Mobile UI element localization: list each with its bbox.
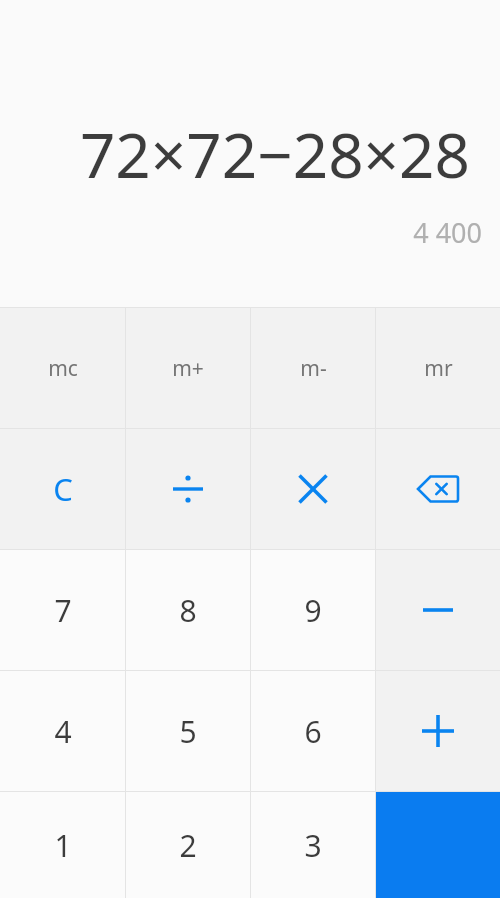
button[interactable]: 7 [0, 550, 125, 670]
button[interactable]: mc [0, 308, 125, 428]
staticText: 1 [54, 825, 72, 866]
staticText: C [53, 468, 73, 510]
staticText: 9 [304, 590, 322, 631]
button[interactable]: 2 [126, 792, 250, 898]
button[interactable]: 6 [251, 671, 375, 791]
button[interactable]: m+ [126, 308, 250, 428]
button[interactable]: Plus [376, 671, 500, 791]
staticText: 6 [304, 711, 322, 752]
button[interactable]: m- [251, 308, 375, 428]
staticText: m+ [172, 354, 204, 383]
staticText: 72×72−28×28 [0, 112, 470, 196]
button[interactable]: 1 [0, 792, 125, 898]
staticText: 5 [179, 711, 197, 752]
button[interactable]: Multiply [251, 429, 375, 549]
staticText: m- [300, 354, 327, 383]
button[interactable]: Backspace [376, 429, 500, 549]
button[interactable]: 5 [126, 671, 250, 791]
staticText: 7 [54, 590, 72, 631]
button[interactable]: 8 [126, 550, 250, 670]
button[interactable]: Minus [376, 550, 500, 670]
button[interactable]: 3 [251, 792, 375, 898]
button[interactable]: 9 [251, 550, 375, 670]
staticText: 4 [54, 711, 72, 752]
button[interactable]: C [0, 429, 125, 549]
button[interactable]: 4 [0, 671, 125, 791]
staticText: mr [424, 354, 453, 383]
staticText: 8 [179, 590, 197, 631]
staticText: mc [48, 354, 78, 383]
button[interactable]: mr [376, 308, 500, 428]
staticText: 4 400 [0, 214, 482, 251]
button[interactable]: Divide [126, 429, 250, 549]
staticText: 3 [304, 825, 322, 866]
staticText: 2 [179, 825, 197, 866]
